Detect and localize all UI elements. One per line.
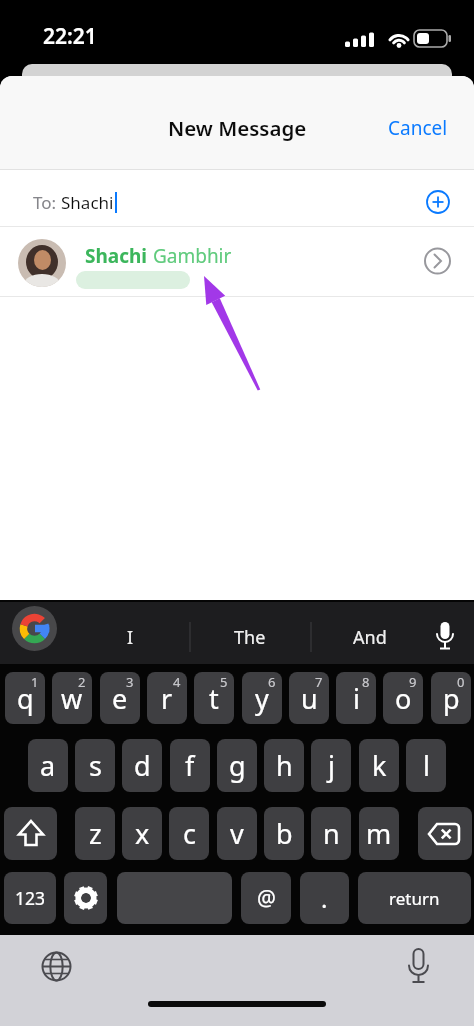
button[interactable]: return — [358, 872, 471, 924]
staticText: t — [209, 680, 219, 717]
button[interactable] — [117, 872, 232, 924]
staticText: r — [161, 680, 173, 717]
button[interactable]: And — [330, 616, 410, 658]
button[interactable]: f — [170, 739, 210, 792]
staticText: And — [353, 625, 387, 650]
button[interactable] — [418, 807, 472, 860]
staticText: To: — [33, 191, 61, 214]
button[interactable]: x — [122, 807, 162, 860]
staticText: 0 — [457, 673, 465, 691]
staticText: l — [423, 747, 430, 784]
staticText: 5 — [220, 673, 228, 691]
staticText: @ — [257, 884, 276, 913]
staticText: New Message — [168, 114, 307, 142]
staticText: 2 — [78, 673, 86, 691]
staticText: Shachi — [61, 191, 114, 214]
staticText: 9 — [409, 673, 417, 691]
staticText: 6 — [268, 673, 276, 691]
staticText: i — [353, 680, 360, 717]
button[interactable]: b — [264, 807, 304, 860]
button[interactable]: . — [300, 872, 349, 924]
staticText: b — [276, 815, 293, 852]
button[interactable]: a — [28, 739, 68, 792]
staticText: Shachi — [85, 243, 148, 269]
staticText: w — [61, 680, 83, 717]
button[interactable]: h — [264, 739, 304, 792]
button[interactable]: v — [217, 807, 257, 860]
button[interactable]: w — [52, 672, 92, 724]
staticText: g — [229, 747, 246, 784]
staticText: Gambhir — [148, 243, 232, 269]
staticText: j — [328, 747, 335, 784]
staticText: The — [234, 625, 266, 650]
button[interactable]: r — [147, 672, 187, 724]
staticText: 123 — [15, 886, 46, 910]
button[interactable]: j — [311, 739, 351, 792]
staticText: 1 — [31, 673, 39, 691]
staticText: u — [301, 680, 318, 717]
staticText: return — [389, 887, 440, 910]
button[interactable]: l — [406, 739, 446, 792]
staticText: y — [255, 680, 269, 717]
button[interactable]: n — [311, 807, 351, 860]
button[interactable]: p — [431, 672, 471, 724]
button[interactable] — [12, 606, 57, 651]
button[interactable]: I — [90, 616, 170, 658]
button[interactable]: k — [359, 739, 399, 792]
button[interactable]: t — [194, 672, 234, 724]
staticText: c — [183, 815, 196, 852]
button[interactable]: @ — [241, 872, 291, 924]
button[interactable]: c — [169, 807, 209, 860]
staticText: h — [276, 747, 293, 784]
button[interactable]: Cancel — [388, 96, 458, 160]
button[interactable]: i — [336, 672, 376, 724]
button[interactable] — [0, 227, 474, 296]
staticText: e — [112, 680, 128, 717]
button[interactable]: e — [100, 672, 140, 724]
staticText: I — [127, 625, 134, 650]
staticText: 3 — [126, 673, 134, 691]
staticText: 22:21 — [43, 22, 97, 51]
staticText: 8 — [362, 673, 370, 691]
button[interactable]: y — [242, 672, 282, 724]
staticText: . — [321, 882, 328, 915]
staticText: m — [366, 815, 392, 852]
button[interactable]: g — [217, 739, 257, 792]
staticText: v — [230, 815, 244, 852]
button[interactable]: m — [359, 807, 399, 860]
button[interactable]: z — [75, 807, 115, 860]
button[interactable]: u — [289, 672, 329, 724]
button[interactable]: To: — [0, 170, 474, 226]
button[interactable] — [4, 807, 57, 860]
staticText: d — [134, 747, 151, 784]
staticText: x — [135, 815, 150, 852]
staticText: n — [323, 815, 340, 852]
staticText: q — [17, 680, 34, 717]
button[interactable] — [64, 872, 107, 924]
staticText: k — [372, 747, 387, 784]
button[interactable]: q — [5, 672, 45, 724]
button[interactable]: d — [122, 739, 162, 792]
button[interactable]: 123 — [4, 872, 56, 924]
button[interactable]: o — [383, 672, 423, 724]
staticText: a — [40, 747, 56, 784]
staticText: f — [185, 747, 195, 784]
staticText: 7 — [315, 673, 323, 691]
staticText: p — [443, 680, 460, 717]
staticText: s — [89, 747, 102, 784]
staticText: z — [89, 815, 102, 852]
staticText: o — [395, 680, 412, 717]
button[interactable]: The — [210, 616, 290, 658]
staticText: 4 — [173, 673, 181, 691]
staticText: Cancel — [388, 115, 448, 141]
button[interactable]: s — [75, 739, 115, 792]
